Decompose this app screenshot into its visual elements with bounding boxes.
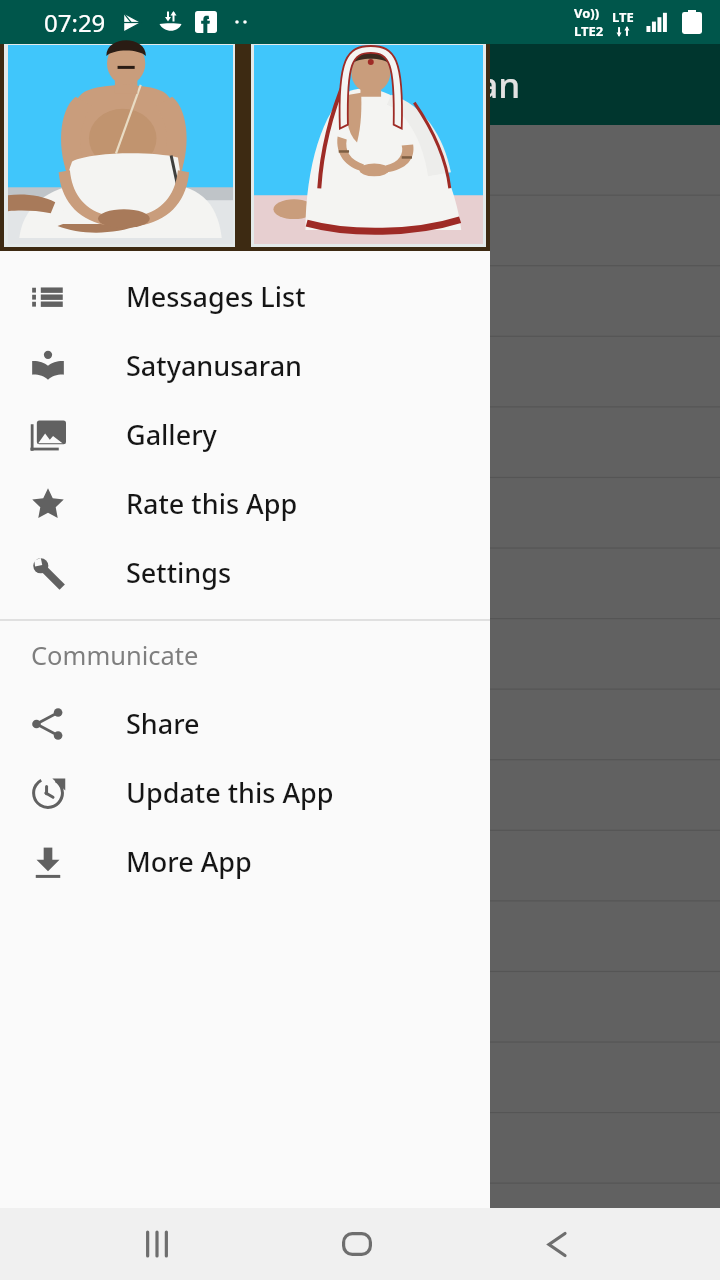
button[interactable]: Rate this App [0, 469, 490, 538]
button[interactable] [0, 1048, 720, 1119]
button[interactable]: Gallery [0, 400, 490, 469]
staticText: Vo)) [574, 4, 600, 22]
button[interactable] [0, 267, 720, 338]
staticText: Communicate [31, 638, 199, 673]
button[interactable] [0, 125, 720, 196]
staticText: 07:29 [44, 6, 106, 39]
button[interactable] [0, 906, 720, 977]
button[interactable] [0, 835, 720, 906]
button[interactable]: Back [457, 1208, 657, 1280]
button[interactable]: Open navigation drawer [0, 44, 80, 124]
button[interactable]: Messages List [0, 262, 490, 331]
staticText: Share [126, 705, 200, 742]
staticText: More App [126, 843, 252, 880]
button[interactable] [0, 693, 720, 764]
button[interactable] [0, 764, 720, 835]
button[interactable]: Update this App [0, 758, 490, 827]
button[interactable] [0, 1119, 720, 1190]
button[interactable]: Satyanusaran [0, 331, 490, 400]
button[interactable] [0, 409, 720, 480]
button[interactable] [0, 1190, 720, 1261]
button[interactable]: Recents [57, 1208, 257, 1280]
button[interactable] [0, 622, 720, 693]
staticText: Gallery [126, 416, 217, 453]
staticText: Rate this App [126, 485, 298, 522]
button[interactable] [0, 551, 720, 622]
staticText: Messages List [126, 278, 306, 315]
staticText: Update this App [126, 774, 334, 811]
button[interactable]: Settings [0, 538, 490, 607]
button[interactable]: Share [0, 689, 490, 758]
staticText: LTE [612, 8, 634, 26]
button[interactable]: More App [0, 827, 490, 896]
staticText: Settings [126, 554, 232, 591]
staticText: LTE2 [574, 22, 604, 40]
button[interactable]: Home [257, 1208, 457, 1280]
staticText: Satyanusaran [292, 61, 521, 109]
button[interactable] [0, 977, 720, 1048]
button[interactable] [0, 480, 720, 551]
staticText: Satyanusaran [126, 347, 303, 384]
button[interactable] [0, 196, 720, 267]
button[interactable] [0, 338, 720, 409]
